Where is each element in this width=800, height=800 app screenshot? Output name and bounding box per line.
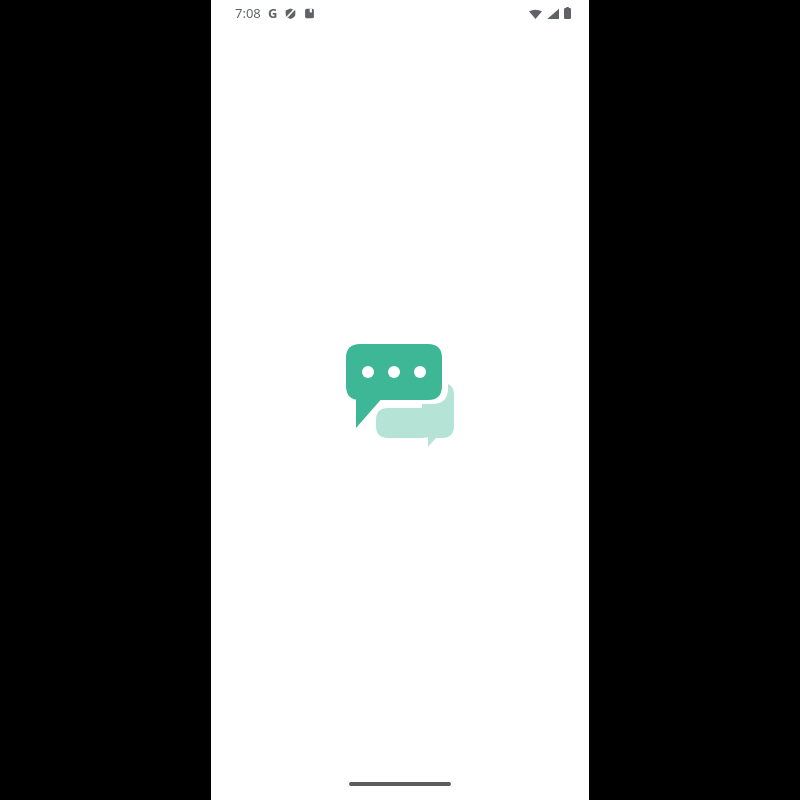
staticText: 7:08 bbox=[235, 4, 261, 22]
other: Messages app logo bbox=[342, 342, 458, 450]
staticText: G bbox=[268, 4, 278, 22]
